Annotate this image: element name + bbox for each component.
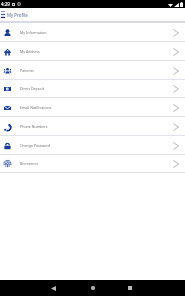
staticText: My Address (20, 49, 40, 54)
staticText: Email Notifications (20, 105, 52, 110)
staticText: Direct Deposit (20, 86, 44, 91)
staticText: My Information (20, 30, 47, 35)
staticText: Patients (20, 68, 34, 73)
staticText: Change Password (20, 143, 51, 148)
button[interactable]: Biometrics (0, 154, 185, 173)
button[interactable]: Back (47, 284, 59, 292)
staticText: Biometrics (20, 161, 38, 166)
staticText: 4:29 (1, 1, 10, 7)
button[interactable]: My Information (0, 23, 185, 42)
staticText: My Profile (7, 12, 28, 18)
button[interactable]: Home (87, 284, 99, 292)
button[interactable]: Email Notifications (0, 98, 185, 117)
button[interactable]: Change Password (0, 136, 185, 155)
button[interactable]: Recents (124, 284, 136, 292)
staticText: Phone Numbers (20, 124, 48, 129)
button[interactable]: Phone Numbers (0, 117, 185, 136)
button[interactable]: Direct Deposit (0, 79, 185, 98)
button[interactable]: Menu (0, 8, 5, 21)
button[interactable]: My Address (0, 42, 185, 61)
button[interactable]: Patients (0, 61, 185, 80)
